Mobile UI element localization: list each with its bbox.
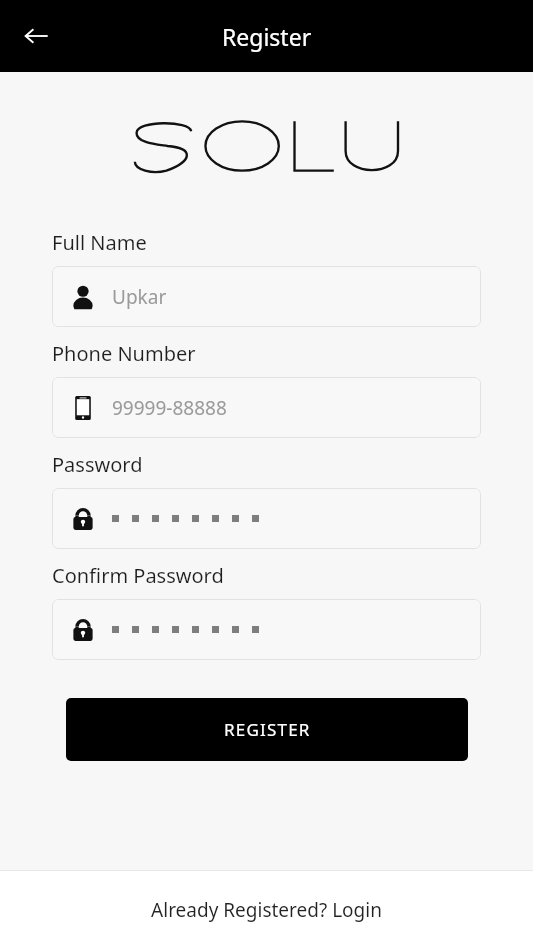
staticText: Full Name	[52, 229, 147, 256]
button[interactable]: 99999-88888	[52, 377, 481, 438]
button[interactable]	[52, 599, 481, 660]
staticText: Password	[52, 451, 143, 478]
staticText: Phone Number	[52, 340, 196, 367]
button[interactable]	[52, 488, 481, 549]
staticText: REGISTER	[224, 718, 311, 741]
button[interactable]: Already Registered? Login	[0, 871, 533, 948]
staticText: 99999-88888	[112, 395, 227, 421]
button[interactable]: Upkar	[52, 266, 481, 327]
other: SOLU logo	[136, 118, 398, 174]
staticText: Upkar	[112, 284, 167, 310]
staticText: Confirm Password	[52, 562, 224, 589]
button[interactable]: REGISTER	[66, 698, 468, 761]
staticText: Already Registered? Login	[151, 897, 382, 923]
staticText: Register	[222, 21, 312, 52]
button[interactable]: Back	[10, 10, 62, 62]
